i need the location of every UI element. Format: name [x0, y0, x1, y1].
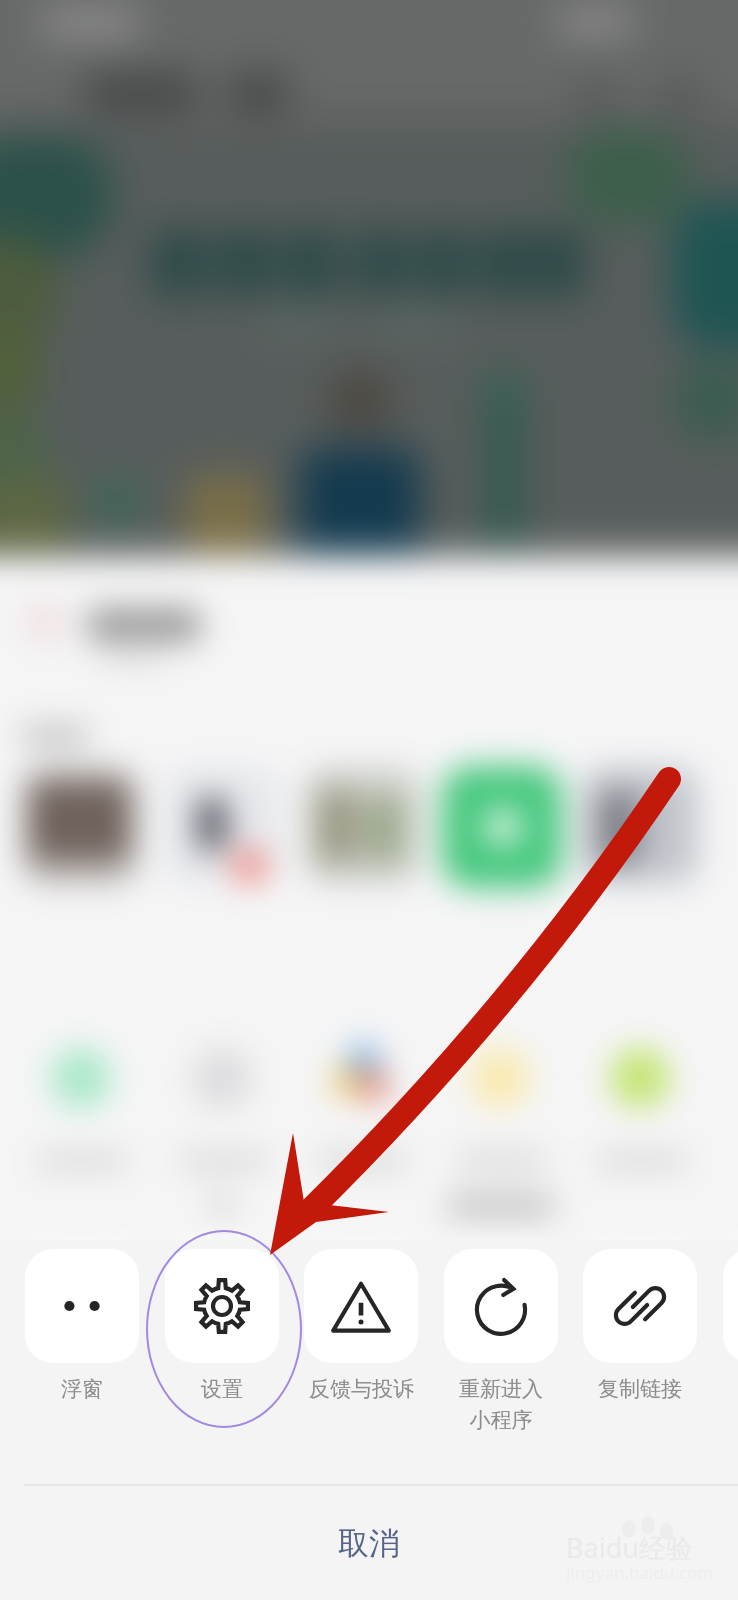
button[interactable]: 浮窗 — [25, 1249, 139, 1402]
staticText: 反馈与投诉 — [309, 1376, 414, 1402]
staticText: 取消 — [338, 1524, 400, 1563]
other: 浮窗 — [25, 1249, 139, 1363]
staticText: 复制链接 — [598, 1376, 682, 1402]
other: 设置 — [165, 1249, 279, 1363]
button[interactable]: 设置 — [165, 1249, 279, 1402]
button[interactable]: 取消 — [0, 1486, 738, 1600]
staticText: 浮窗 — [61, 1376, 103, 1402]
button[interactable]: 重新进入小程序 — [444, 1249, 558, 1433]
button[interactable]: 复制链接 — [583, 1249, 697, 1402]
staticText: 设置 — [201, 1376, 243, 1402]
staticText: 重新进入 小程序 — [459, 1376, 543, 1433]
button[interactable]: 反馈与投诉 — [304, 1249, 418, 1402]
other: 反馈与投诉 — [304, 1249, 418, 1363]
staticText: Baidu经验 — [566, 1529, 693, 1566]
other: 重新进入小程序 — [444, 1249, 558, 1363]
other: 复制链接 — [583, 1249, 697, 1363]
